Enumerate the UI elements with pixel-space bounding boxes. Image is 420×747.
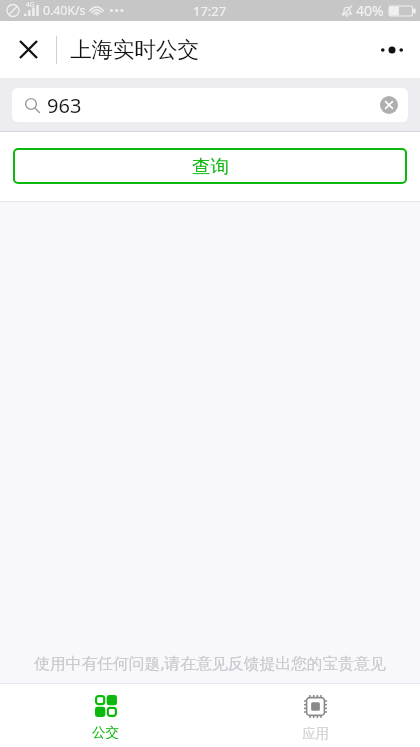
staticText: 应用 [302,725,329,742]
button[interactable]: 963 [12,88,408,122]
staticText: 963 [47,92,82,119]
button[interactable]: 公交 [0,684,210,747]
button[interactable]: 查询 [13,148,407,184]
staticText: 40% [356,1,384,20]
staticText: 使用中有任何问题,请在意见反馈提出您的宝贵意见 [34,652,386,674]
staticText: 上海实时公交 [70,36,199,63]
button[interactable]: 应用 [210,684,420,747]
staticText: 查询 [192,155,229,178]
button[interactable]: Close [0,21,56,78]
staticText: 0.40K/s [43,2,86,19]
button[interactable]: Clear text [378,94,400,116]
staticText: 公交 [92,724,119,741]
button[interactable]: More options [364,21,420,78]
staticText: 17:27 [193,2,227,20]
staticText: 4G [26,0,35,9]
